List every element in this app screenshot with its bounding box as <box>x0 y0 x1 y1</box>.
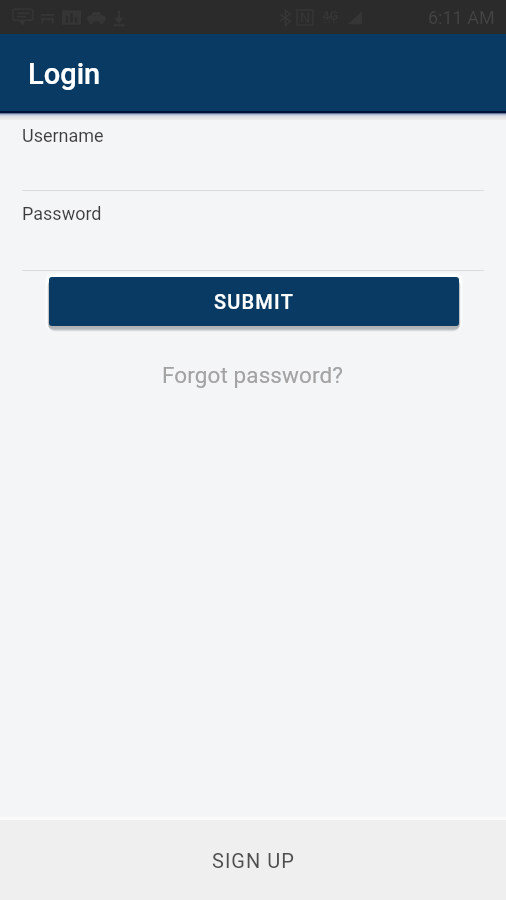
staticText: Login <box>28 57 101 91</box>
staticText: LTE <box>323 15 338 26</box>
other: NFC <box>297 9 313 26</box>
staticText: Username <box>22 125 104 146</box>
button[interactable]: SUBMIT <box>49 277 459 326</box>
other: Equalizer <box>62 9 81 26</box>
button[interactable]: SIGN UP <box>0 820 506 900</box>
staticText: 6:11 AM <box>428 7 495 28</box>
other: Messages <box>13 9 33 26</box>
staticText: 4G <box>322 8 339 23</box>
staticText: SIGN UP <box>212 849 295 872</box>
other: Bluetooth <box>279 9 292 26</box>
staticText: SUBMIT <box>214 290 294 313</box>
other: Mobile signal <box>347 9 363 26</box>
staticText: Password <box>22 203 102 224</box>
other: Driving mode <box>87 9 106 26</box>
button[interactable]: Forgot password? <box>148 356 358 394</box>
other: Download <box>112 9 126 26</box>
button[interactable]: Username <box>22 118 484 191</box>
other: Do not disturb <box>39 9 56 26</box>
button[interactable]: Password <box>22 196 484 271</box>
